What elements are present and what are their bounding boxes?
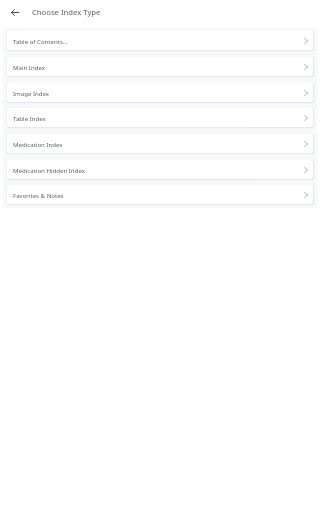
staticText: Table of Contents... bbox=[13, 37, 304, 45]
button[interactable]: Favorites & Notes bbox=[7, 185, 313, 204]
button[interactable]: Main Index bbox=[7, 57, 313, 76]
button[interactable]: Table Index bbox=[7, 108, 313, 127]
staticText: Medication Index bbox=[13, 140, 304, 148]
staticText: Choose Index Type bbox=[32, 7, 101, 17]
button[interactable]: Medication Hidden Index bbox=[7, 160, 313, 179]
staticText: Table Index bbox=[13, 114, 304, 122]
button[interactable]: Image Index bbox=[7, 83, 313, 102]
button[interactable]: Table of Contents... bbox=[7, 31, 313, 50]
staticText: Main Index bbox=[13, 63, 304, 71]
staticText: Favorites & Notes bbox=[13, 191, 304, 199]
staticText: Image Index bbox=[13, 89, 304, 97]
staticText: Medication Hidden Index bbox=[13, 166, 304, 174]
button[interactable]: Back bbox=[9, 7, 20, 18]
button[interactable]: Medication Index bbox=[7, 134, 313, 153]
